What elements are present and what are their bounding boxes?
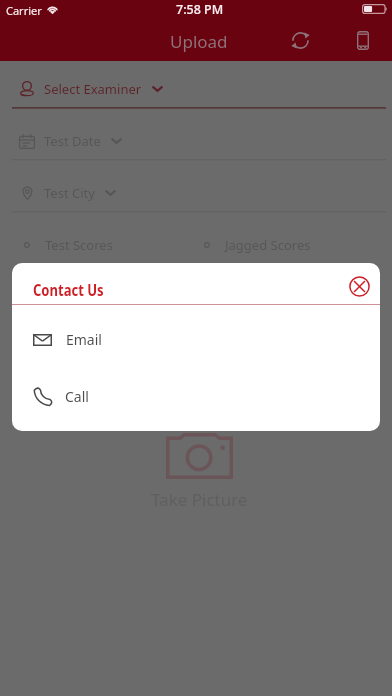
button[interactable]: Select Examiner [0,61,392,107]
staticText: Select Examiner [44,80,142,98]
staticText: Test Scores [45,236,113,254]
button[interactable]: Close [339,266,379,306]
staticText: Email [66,330,102,349]
button[interactable]: Jagged Scores [204,235,311,254]
button[interactable]: Device [345,23,380,58]
button[interactable]: Test Scores [24,235,113,254]
staticText: Jagged Scores [225,236,311,254]
staticText: Test Date [44,132,101,150]
staticText: Take Picture [151,488,248,511]
staticText: Carrier [6,3,42,18]
button[interactable]: Call [12,368,380,425]
staticText: Test City [44,184,95,202]
staticText: Upload [170,30,228,53]
button[interactable]: Test Date [0,107,392,159]
button[interactable]: Email [12,311,380,368]
staticText: Call [65,387,89,406]
button[interactable]: Refresh [283,23,318,58]
staticText: 7:58 PM [176,1,224,18]
button[interactable]: Take Picture [3,433,392,511]
staticText: Contact Us [33,278,104,300]
